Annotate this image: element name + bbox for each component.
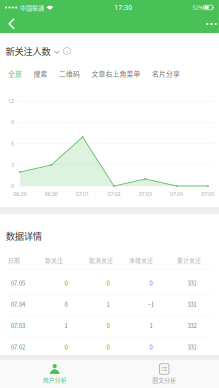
staticText: 新关注 (45, 256, 63, 264)
button[interactable]: 二维码 (59, 69, 80, 78)
staticText: 取消关注 (89, 256, 113, 264)
staticText: 0 (64, 279, 67, 287)
button[interactable]: 图文分析 (109, 360, 219, 388)
staticText: 1 (149, 321, 152, 330)
staticText: 名片分享 (152, 69, 180, 78)
staticText: 06.30 (45, 190, 58, 198)
staticText: 1 (64, 321, 67, 330)
staticText: 1 (106, 300, 109, 308)
staticText: 净增关注 (129, 256, 153, 264)
staticText: −1 (148, 300, 154, 308)
staticText: 52% (192, 4, 202, 11)
staticText: 07.01 (76, 190, 89, 198)
staticText: 17:30 (114, 3, 132, 12)
staticText: 累计关注 (177, 256, 201, 264)
staticText: 331 (187, 300, 196, 308)
button[interactable]: 文章右上角菜单 (91, 69, 140, 78)
staticText: 07.03 (139, 190, 152, 198)
staticText: 0 (106, 279, 109, 287)
staticText: 12 (8, 97, 14, 105)
staticText: 07.04 (170, 190, 183, 198)
button[interactable]: 更多 (200, 14, 219, 34)
staticText: 9 (11, 119, 14, 126)
button[interactable]: 新关注人数 (5, 45, 70, 57)
button[interactable]: 用户分析 (0, 360, 109, 388)
button[interactable]: 全部 (8, 69, 22, 78)
staticText: 0 (64, 343, 67, 351)
staticText: 331 (187, 343, 196, 351)
staticText: 0 (106, 321, 109, 330)
staticText: 0 (11, 182, 14, 189)
staticText: 331 (187, 279, 196, 287)
staticText: 搜索 (33, 69, 47, 78)
staticText: 中国联通 (20, 3, 44, 12)
button[interactable]: 搜索 (33, 69, 47, 78)
staticText: 07.04 (11, 300, 25, 308)
staticText: 07.05 (11, 279, 25, 287)
staticText: 0 (149, 279, 152, 287)
staticText: 全部 (8, 69, 22, 78)
staticText: 07.05 (201, 190, 214, 198)
staticText: 图文分析 (152, 376, 176, 384)
staticText: 6 (11, 140, 14, 147)
staticText: 文章右上角菜单 (91, 69, 140, 78)
staticText: 07.02 (107, 190, 120, 198)
staticText: 3 (11, 161, 14, 168)
staticText: 0 (149, 343, 152, 351)
staticText: 新关注人数 (5, 44, 50, 58)
staticText: 数据详情 (6, 229, 42, 242)
staticText: 07.02 (11, 343, 25, 351)
button[interactable]: 名片分享 (152, 69, 180, 78)
staticText: 06.29 (13, 190, 26, 198)
staticText: 二维码 (59, 69, 80, 78)
staticText: 用户分析 (43, 375, 67, 384)
staticText: 0 (64, 300, 67, 308)
staticText: 332 (187, 321, 196, 330)
staticText: 0 (106, 343, 109, 351)
button[interactable]: 返回 (2, 14, 22, 34)
staticText: 日期 (8, 256, 20, 264)
staticText: 07.03 (11, 321, 25, 330)
